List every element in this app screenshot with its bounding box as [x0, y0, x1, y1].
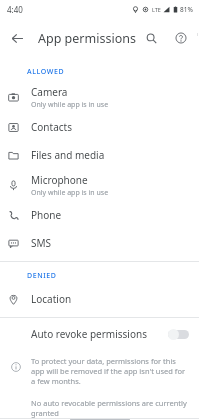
- button[interactable]: Auto revoke permissions: [0, 318, 199, 350]
- staticText: Phone: [31, 208, 62, 222]
- staticText: Only while app is in use: [31, 188, 109, 198]
- staticText: 4:40: [7, 4, 23, 15]
- staticText: LTE: [152, 6, 161, 13]
- staticText: Files and media: [31, 148, 105, 162]
- staticText: ALLOWED: [27, 67, 65, 77]
- button[interactable]: More options: [196, 25, 199, 51]
- staticText: Location: [31, 292, 72, 306]
- staticText: SMS: [31, 236, 52, 250]
- staticText: Contacts: [31, 120, 72, 134]
- button[interactable]: Location: [0, 285, 199, 313]
- staticText: To protect your data, permissions for th…: [31, 356, 191, 386]
- staticText: 81%: [180, 5, 193, 14]
- staticText: Auto revoke permissions: [31, 327, 147, 341]
- button[interactable]: Camera: [0, 81, 199, 113]
- button[interactable]: Back: [0, 21, 34, 55]
- staticText: No auto revocable permissions are curren…: [31, 398, 191, 418]
- button[interactable]: Microphone: [0, 169, 199, 201]
- staticText: App permissions: [38, 30, 136, 47]
- button[interactable]: Search: [136, 23, 166, 53]
- button[interactable]: Files and media: [0, 141, 199, 169]
- staticText: DENIED: [27, 271, 57, 281]
- button[interactable]: SMS: [0, 229, 199, 257]
- staticText: Only while app is in use: [31, 100, 109, 110]
- button[interactable]: Contacts: [0, 113, 199, 141]
- button[interactable]: Phone: [0, 201, 199, 229]
- button[interactable]: Help: [166, 23, 196, 53]
- staticText: Camera: [31, 85, 68, 99]
- staticText: Microphone: [31, 173, 88, 187]
